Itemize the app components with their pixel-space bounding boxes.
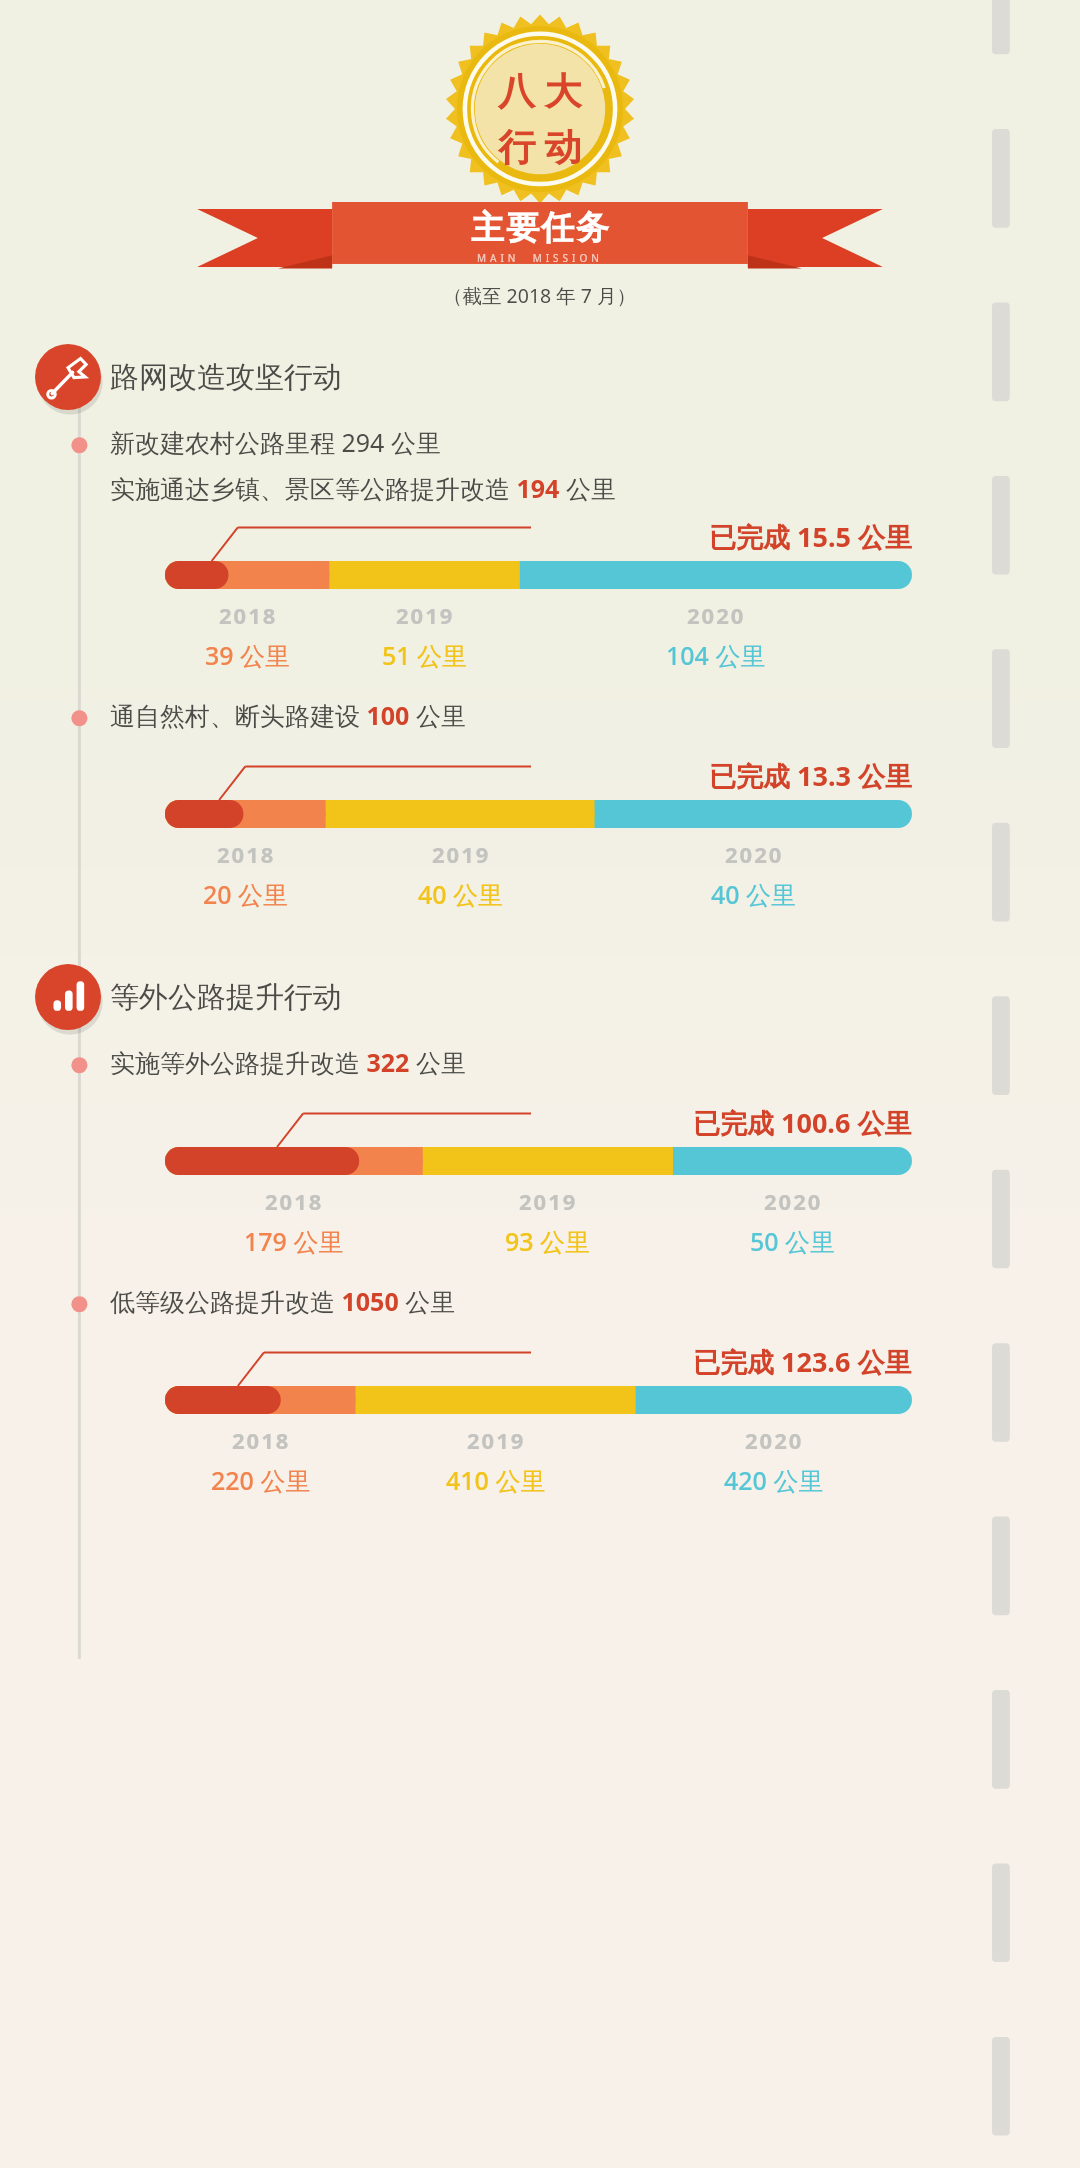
staticText: 2019 bbox=[519, 1186, 578, 1216]
staticText: 主要任务 bbox=[470, 207, 610, 249]
staticText: 51 公里 bbox=[382, 638, 468, 672]
staticText: 已完成 123.6 公里 bbox=[693, 1343, 912, 1380]
staticText: 2020 bbox=[725, 839, 784, 869]
staticText: 2020 bbox=[745, 1425, 804, 1455]
staticText: MAIN MISSION bbox=[477, 251, 603, 265]
staticText: 93 公里 bbox=[505, 1224, 591, 1258]
staticText: 40 公里 bbox=[418, 877, 504, 911]
staticText: 2019 bbox=[467, 1425, 526, 1455]
staticText: 已完成 15.5 公里 bbox=[709, 518, 912, 555]
staticText: 实施等外公路提升改造 322 公里 bbox=[110, 1045, 466, 1079]
button[interactable]: Road network bbox=[35, 344, 101, 410]
staticText: 420 公里 bbox=[724, 1463, 824, 1497]
staticText: 39 公里 bbox=[205, 638, 291, 672]
button[interactable]: Statistics bbox=[35, 964, 101, 1030]
staticText: 已完成 100.6 公里 bbox=[693, 1104, 912, 1141]
staticText: 2018 bbox=[232, 1425, 291, 1455]
button[interactable]: Statistics bbox=[0, 949, 1080, 1045]
staticText: （截至 2018 年 7 月） bbox=[443, 282, 637, 309]
button[interactable]: Road network bbox=[0, 329, 1080, 425]
staticText: 八 大 bbox=[498, 64, 582, 115]
staticText: 通自然村、断头路建设 100 公里 bbox=[110, 698, 466, 732]
staticText: 等外公路提升行动 bbox=[110, 979, 342, 1016]
staticText: 410 公里 bbox=[446, 1463, 546, 1497]
staticText: 实施通达乡镇、景区等公路提升改造 194 公里 bbox=[110, 471, 616, 505]
staticText: 20 公里 bbox=[203, 877, 289, 911]
staticText: 低等级公路提升改造 1050 公里 bbox=[110, 1284, 456, 1318]
staticText: 104 公里 bbox=[666, 638, 766, 672]
staticText: 2018 bbox=[265, 1186, 324, 1216]
staticText: 路网改造攻坚行动 bbox=[110, 359, 342, 396]
staticText: 2020 bbox=[764, 1186, 823, 1216]
staticText: 2019 bbox=[432, 839, 491, 869]
staticText: 179 公里 bbox=[244, 1224, 344, 1258]
staticText: 2018 bbox=[219, 600, 278, 630]
staticText: 40 公里 bbox=[711, 877, 797, 911]
staticText: 2019 bbox=[396, 600, 455, 630]
staticText: 220 公里 bbox=[211, 1463, 311, 1497]
staticText: 2018 bbox=[217, 839, 276, 869]
staticText: 新改建农村公路里程 294 公里 bbox=[110, 425, 441, 459]
staticText: 2020 bbox=[687, 600, 746, 630]
staticText: 行 动 bbox=[498, 120, 582, 171]
staticText: 已完成 13.3 公里 bbox=[709, 757, 912, 794]
staticText: 50 公里 bbox=[750, 1224, 836, 1258]
